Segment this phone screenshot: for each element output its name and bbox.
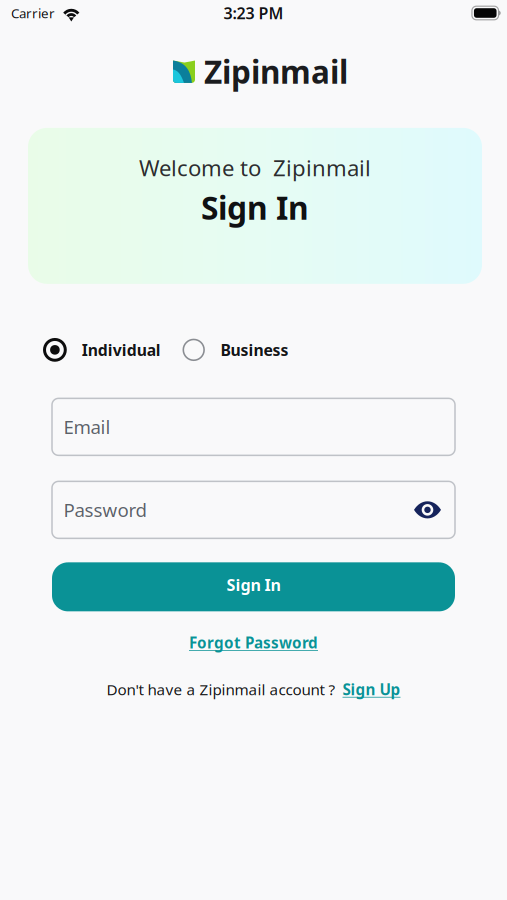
staticText: Sign In xyxy=(201,186,309,229)
button[interactable]: Sign In xyxy=(52,562,455,611)
button[interactable]: Business xyxy=(182,335,289,365)
button[interactable]: Sign Up xyxy=(342,679,400,700)
staticText: Email xyxy=(63,414,110,439)
staticText: Individual xyxy=(82,339,161,360)
staticText: Sign In xyxy=(226,574,280,596)
button[interactable]: Show password xyxy=(410,495,444,525)
staticText: Carrier xyxy=(11,4,55,22)
staticText: Welcome to Zipinmail xyxy=(139,153,371,183)
staticText: Zipinmail xyxy=(204,50,348,93)
staticText: 3:23 PM xyxy=(223,2,283,24)
staticText: Password xyxy=(63,497,146,522)
staticText: Business xyxy=(221,339,289,360)
staticText: Sign Up xyxy=(342,679,400,700)
staticText: Don't have a Zipinmail account ? xyxy=(106,679,335,700)
button[interactable]: Individual xyxy=(43,335,161,365)
button[interactable]: Forgot Password xyxy=(189,632,318,653)
staticText: Forgot Password xyxy=(189,632,318,653)
